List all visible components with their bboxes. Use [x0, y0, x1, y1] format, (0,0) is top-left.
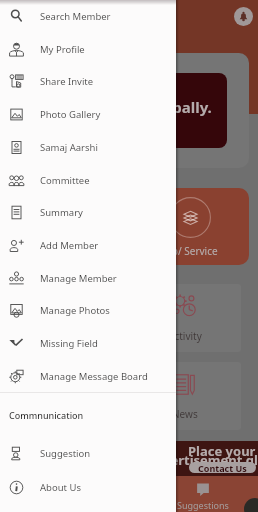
button[interactable]: Search Member [0, 0, 176, 33]
staticText: News [172, 407, 198, 421]
button[interactable]: My Profile [0, 33, 176, 66]
button[interactable]: About Us [0, 471, 176, 504]
staticText: Job/ Service [163, 244, 218, 258]
button[interactable]: News [9, 362, 121, 430]
button[interactable]: News [128, 362, 241, 430]
button[interactable]: Suggestion [0, 437, 176, 470]
staticText: advertisement globally [147, 451, 258, 469]
staticText: Add Member [40, 239, 99, 252]
staticText: Samaj Aarshi [40, 141, 98, 154]
button[interactable]: Add Member [0, 229, 176, 262]
button[interactable]: Job/ Service [132, 188, 249, 265]
button[interactable]: Share Invite [0, 65, 176, 98]
staticText: Connecting you globally. [28, 97, 212, 117]
button[interactable]: Manage Message Board [0, 360, 176, 393]
button[interactable]: Photo Gallery [0, 98, 176, 131]
staticText: Activity [168, 329, 202, 343]
staticText: Committee [40, 174, 90, 187]
staticText: Summary [40, 206, 83, 219]
staticText: Commnunication [9, 409, 84, 421]
button[interactable]: Activity [9, 284, 121, 352]
staticText: Manage Photos [40, 304, 110, 317]
button[interactable]: Contact Us [189, 462, 256, 473]
staticText: Photo Gallery [40, 108, 101, 121]
button[interactable]: Summary [0, 196, 176, 229]
button[interactable]: Manage Member [0, 262, 176, 295]
staticText: Suggestions [177, 499, 229, 511]
staticText: Search Member [40, 10, 111, 23]
button[interactable]: Missing Field [0, 327, 176, 360]
button[interactable]: Suggestions [164, 476, 242, 512]
staticText: Activity [48, 329, 82, 343]
staticText: Suggestion [40, 447, 91, 460]
button[interactable]: Job/ Service [8, 188, 124, 265]
button[interactable]: Notifications [234, 7, 253, 26]
staticText: Place your [188, 442, 256, 460]
staticText: Missing Field [40, 337, 98, 350]
staticText: Share Invite [40, 75, 94, 88]
staticText: News [53, 407, 79, 421]
staticText: Contact Us [198, 462, 247, 473]
button[interactable]: Manage Photos [0, 294, 176, 327]
other: Suggestions [196, 482, 210, 496]
button[interactable]: Activity [128, 284, 241, 352]
staticText: Manage Message Board [40, 370, 148, 383]
button[interactable]: Committee [0, 164, 176, 197]
staticText: Job/ Service [39, 244, 94, 258]
staticText: My Profile [40, 43, 85, 56]
staticText: Manage Member [40, 272, 117, 285]
staticText: About Us [40, 481, 81, 494]
button[interactable]: Samaj Aarshi [0, 131, 176, 164]
